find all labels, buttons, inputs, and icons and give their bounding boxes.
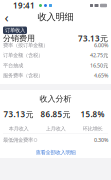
staticText: 73.13元 xyxy=(78,33,108,44)
staticText: 查看全部收入明细 xyxy=(35,149,75,156)
staticText: 4.65% xyxy=(94,72,108,79)
button[interactable]: Back xyxy=(0,11,13,23)
staticText: 42.75元 xyxy=(90,52,108,59)
staticText: 分销费用 xyxy=(3,33,35,43)
staticText: 73.13元 xyxy=(3,109,33,119)
staticText: 0.30% xyxy=(94,136,108,144)
staticText: 本月收入 xyxy=(8,125,28,132)
staticText: 订单金额（含税） xyxy=(3,52,43,59)
staticText: 平台抽成 xyxy=(3,62,23,69)
staticText: 上月收入 xyxy=(45,125,65,132)
staticText: 6.00% xyxy=(94,42,108,49)
staticText: 订单收入 xyxy=(5,27,25,34)
staticText: 最低佣金费率 xyxy=(3,137,33,143)
staticText: 服务费率（含税） xyxy=(3,72,43,79)
staticText: 86.85元 xyxy=(40,109,70,119)
staticText: 费率（按订单金额） xyxy=(3,42,48,48)
staticText: ‹ xyxy=(4,8,8,26)
staticText: 16.50元 xyxy=(90,62,108,69)
staticText: 收入分析 xyxy=(39,94,71,104)
staticText: 19:41 xyxy=(13,0,35,11)
staticText: 环比增长 xyxy=(82,125,102,132)
button[interactable]: 查看全部收入明细 xyxy=(0,149,111,157)
staticText: 收入明细 xyxy=(37,11,73,23)
staticText: 15.8% xyxy=(80,109,104,119)
